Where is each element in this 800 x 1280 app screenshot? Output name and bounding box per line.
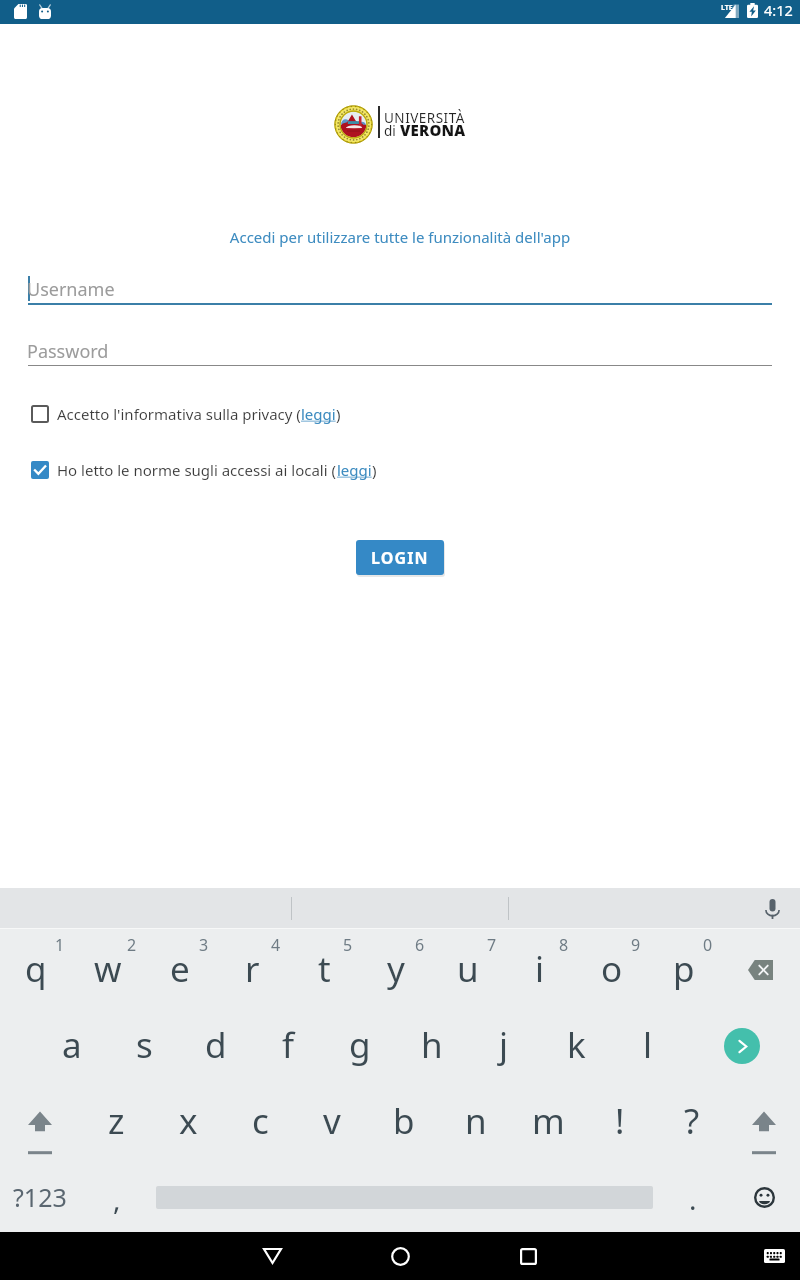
button[interactable]: ! xyxy=(584,1091,656,1143)
button[interactable]: b xyxy=(368,1091,440,1143)
staticText: c xyxy=(252,1097,269,1145)
button[interactable]: v xyxy=(296,1091,368,1143)
button[interactable]: f xyxy=(252,1015,324,1067)
button[interactable]: Home xyxy=(376,1232,424,1280)
staticText: . xyxy=(689,1180,697,1218)
staticText: 9 xyxy=(631,934,641,956)
staticText: l xyxy=(643,1021,653,1069)
staticText: UNIVERSITÀ xyxy=(384,109,465,127)
staticText: g xyxy=(349,1021,371,1069)
button[interactable]: Enter xyxy=(724,1028,760,1064)
staticText: 2 xyxy=(127,934,137,956)
staticText: w xyxy=(94,945,122,993)
staticText: ) xyxy=(336,404,341,424)
staticText: x xyxy=(179,1097,198,1145)
button[interactable]: Backspace xyxy=(740,950,781,990)
button[interactable]: w xyxy=(72,939,144,991)
button[interactable]: e xyxy=(144,939,216,991)
staticText: o xyxy=(601,945,623,993)
button[interactable]: t xyxy=(288,939,360,991)
staticText: ) xyxy=(372,460,377,480)
button[interactable]: Accetto l'informativa sulla privacy ( xyxy=(22,401,341,427)
button[interactable]: s xyxy=(108,1015,180,1067)
button[interactable]: Hide keyboard xyxy=(764,1249,785,1263)
staticText: h xyxy=(421,1021,443,1069)
button[interactable]: Ho letto le norme sugli accessi ai local… xyxy=(22,457,377,483)
button[interactable]: leggi xyxy=(301,404,336,424)
staticText: ? xyxy=(684,1097,700,1145)
button[interactable]: leggi xyxy=(337,460,372,480)
button[interactable]: Password field xyxy=(28,334,772,366)
button[interactable]: d xyxy=(180,1015,252,1067)
button[interactable]: LOGIN xyxy=(356,540,444,575)
button[interactable]: i xyxy=(504,939,576,991)
button[interactable]: p xyxy=(648,939,720,991)
staticText: Password xyxy=(27,339,109,364)
button[interactable]: z xyxy=(80,1091,152,1143)
button[interactable]: Emoji xyxy=(740,1172,788,1222)
button[interactable]: q xyxy=(0,939,72,991)
staticText: k xyxy=(567,1021,586,1069)
button[interactable]: Shift xyxy=(12,1098,68,1156)
staticText: 7 xyxy=(487,934,497,956)
staticText: 4:12 xyxy=(764,0,793,20)
staticText: Accedi per utilizzare tutte le funzional… xyxy=(0,227,800,247)
button[interactable]: n xyxy=(440,1091,512,1143)
staticText: z xyxy=(108,1097,125,1145)
button[interactable]: l xyxy=(612,1015,684,1067)
staticText: ! xyxy=(615,1097,625,1145)
button[interactable]: j xyxy=(468,1015,540,1067)
button[interactable]: k xyxy=(540,1015,612,1067)
staticText: VERONA xyxy=(400,120,466,140)
button[interactable]: . xyxy=(662,1172,724,1222)
staticText: f xyxy=(282,1021,295,1069)
staticText: q xyxy=(25,945,47,993)
button[interactable]: ? xyxy=(656,1091,728,1143)
button[interactable]: o xyxy=(576,939,648,991)
button[interactable]: m xyxy=(512,1091,584,1143)
staticText: p xyxy=(673,945,695,993)
button[interactable]: g xyxy=(324,1015,396,1067)
button[interactable]: ?123 xyxy=(8,1172,72,1222)
button[interactable]: h xyxy=(396,1015,468,1067)
staticText: s xyxy=(136,1021,153,1069)
staticText: di xyxy=(384,122,400,140)
staticText: Ho letto le norme sugli accessi ai local… xyxy=(57,460,337,480)
button[interactable]: Shift xyxy=(736,1098,792,1156)
staticText: 4 xyxy=(271,934,281,956)
staticText: y xyxy=(387,945,405,993)
staticText: 0 xyxy=(703,934,713,956)
staticText: Username xyxy=(27,277,115,302)
staticText: Accetto l'informativa sulla privacy ( xyxy=(57,404,301,424)
button[interactable]: r xyxy=(216,939,288,991)
button[interactable]: x xyxy=(152,1091,224,1143)
button[interactable]: , xyxy=(86,1172,148,1222)
staticText: r xyxy=(245,945,260,993)
staticText: t xyxy=(318,945,331,993)
staticText: u xyxy=(457,945,479,993)
staticText: , xyxy=(113,1180,121,1218)
staticText: LTE xyxy=(721,3,733,13)
staticText: v xyxy=(323,1097,341,1145)
button[interactable]: a xyxy=(36,1015,108,1067)
button[interactable]: u xyxy=(432,939,504,991)
staticText: LOGIN xyxy=(371,547,429,569)
staticText: 3 xyxy=(199,934,209,956)
staticText: n xyxy=(465,1097,487,1145)
staticText: m xyxy=(532,1097,565,1145)
staticText: i xyxy=(535,945,545,993)
button[interactable]: y xyxy=(360,939,432,991)
staticText: j xyxy=(499,1021,509,1069)
button[interactable]: Voice input xyxy=(758,894,787,923)
staticText: d xyxy=(205,1021,227,1069)
staticText: 6 xyxy=(415,934,425,956)
button[interactable]: c xyxy=(224,1091,296,1143)
staticText: b xyxy=(393,1097,415,1145)
staticText: 5 xyxy=(343,934,353,956)
button[interactable]: Recents xyxy=(504,1232,552,1280)
staticText: ?123 xyxy=(13,1180,67,1214)
button[interactable]: Back xyxy=(248,1232,296,1280)
staticText: 8 xyxy=(559,934,569,956)
button[interactable]: Username field xyxy=(28,272,772,305)
